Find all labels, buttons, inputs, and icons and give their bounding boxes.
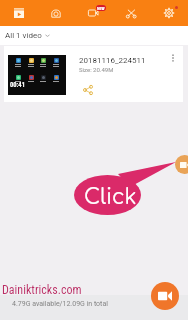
button[interactable]: Record video bbox=[151, 282, 179, 310]
button[interactable]: 00:41 bbox=[4, 46, 183, 102]
staticText: Dainiktricks.com bbox=[2, 283, 82, 297]
button[interactable]: All 1 video bbox=[5, 31, 50, 40]
button[interactable]: More options bbox=[165, 50, 181, 66]
button[interactable]: Share bbox=[80, 82, 96, 98]
button[interactable]: Settings bbox=[150, 0, 188, 26]
staticText: Size: 20.49M bbox=[79, 66, 114, 73]
button[interactable]: Record video shortcut bbox=[175, 155, 188, 174]
staticText: 4.79G available/12.09G in total bbox=[12, 300, 108, 308]
button[interactable]: Videos bbox=[0, 0, 37, 26]
button[interactable]: Edit bbox=[112, 0, 150, 26]
staticText: Click bbox=[84, 185, 137, 208]
staticText: All 1 video bbox=[5, 31, 42, 40]
staticText: 20181116_224511 bbox=[79, 56, 146, 65]
button[interactable]: Screen recorder bbox=[74, 0, 112, 26]
staticText: 00:41 bbox=[10, 81, 25, 89]
staticText: NEW bbox=[97, 6, 105, 11]
button[interactable]: Camera bbox=[37, 0, 74, 26]
